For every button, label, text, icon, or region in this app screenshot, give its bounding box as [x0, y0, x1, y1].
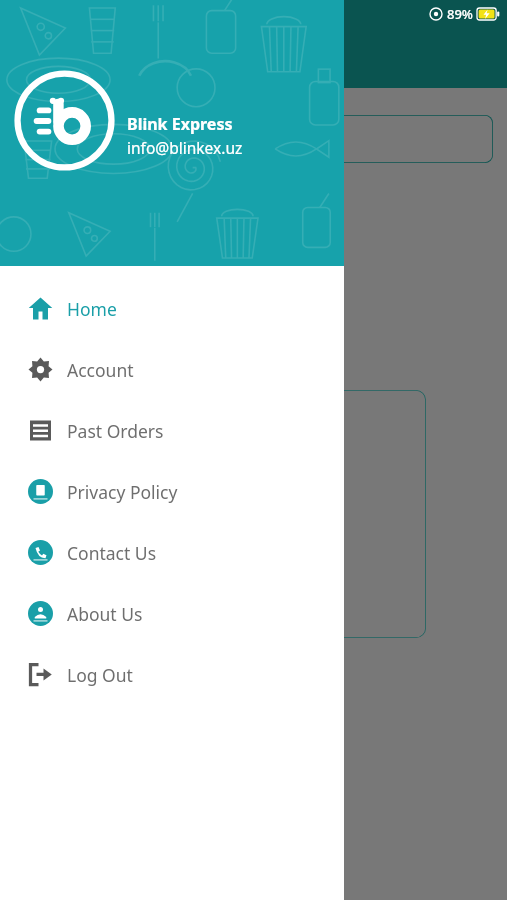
staticText: Blink Express: [127, 113, 233, 135]
button[interactable]: About Us: [0, 583, 344, 644]
button[interactable]: Home: [0, 278, 344, 339]
staticText: On Going Orders: [199, 128, 335, 151]
button[interactable]: Privacy Policy: [0, 461, 344, 522]
staticText: About Us: [67, 602, 143, 626]
button[interactable]: Contact Us: [0, 522, 344, 583]
button[interactable]: Log Out: [0, 644, 344, 705]
staticText: info@blinkex.uz: [127, 137, 243, 158]
staticText: Jio: [26, 5, 42, 23]
button[interactable]: Account: [0, 339, 344, 400]
staticText: 89%: [447, 5, 473, 23]
staticText: Log Out: [67, 663, 133, 687]
staticText: Home: [67, 297, 117, 321]
staticText: Past Orders: [67, 419, 164, 443]
staticText: Privacy Policy: [67, 480, 178, 504]
button[interactable]: Past Orders: [0, 400, 344, 461]
button[interactable]: On Going Orders: [181, 115, 493, 163]
button[interactable]: Your order is placed.: [150, 390, 426, 638]
staticText: Contact Us: [67, 541, 157, 565]
staticText: 4:27 PM: [160, 5, 210, 23]
staticText: Account: [67, 358, 134, 382]
